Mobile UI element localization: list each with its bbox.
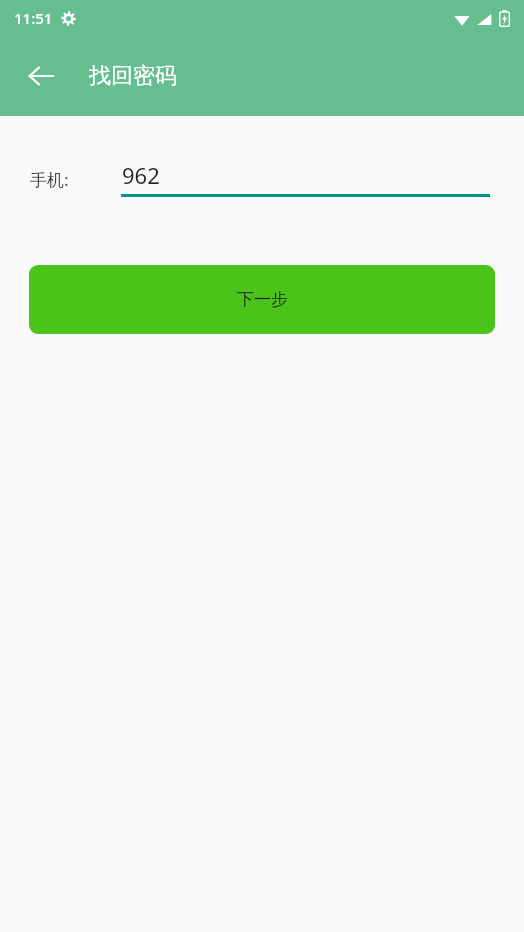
staticText: 下一步 <box>237 289 288 310</box>
button[interactable]: 下一步 <box>29 265 495 334</box>
staticText: 962 <box>122 160 160 190</box>
staticText: 11:51 <box>14 8 53 28</box>
staticText: 找回密码 <box>89 62 177 90</box>
button[interactable]: 962 <box>121 155 490 203</box>
staticText: 手机: <box>30 168 69 191</box>
button[interactable]: Back <box>9 44 73 108</box>
